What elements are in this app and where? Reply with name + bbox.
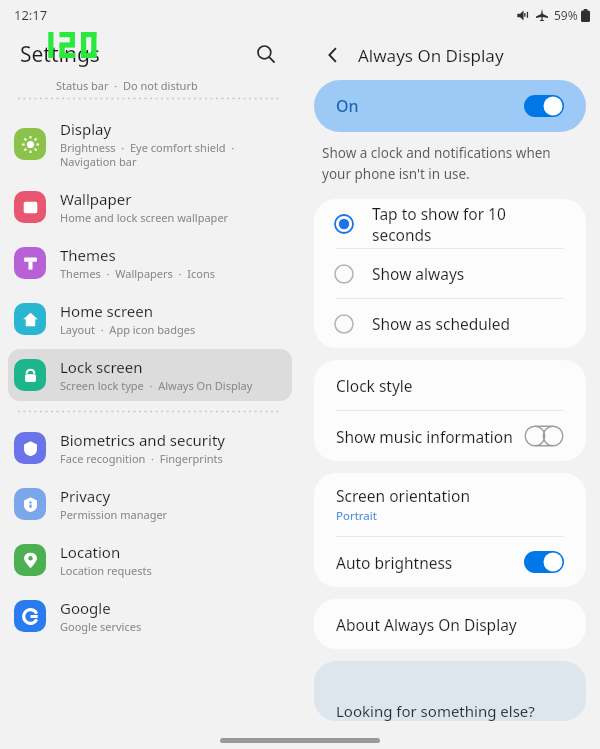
staticText: On [336, 95, 359, 117]
staticText: Status bar · Do not disturb [56, 78, 198, 93]
staticText: Auto brightness [336, 552, 453, 573]
staticText: Themes · Wallpapers · Icons [60, 266, 215, 281]
staticText: Portrait [336, 508, 377, 524]
button[interactable]: Home screen [8, 293, 292, 345]
staticText: Home screen [60, 301, 154, 321]
staticText: Lock screen [60, 357, 143, 377]
staticText: Google services [60, 619, 142, 634]
staticText: Looking for something else? [336, 701, 535, 721]
button[interactable]: Display [8, 111, 292, 177]
button[interactable]: Lock screen [8, 349, 292, 401]
button[interactable]: Screen orientation [314, 473, 586, 536]
staticText: Show a clock and notifications when your… [322, 144, 551, 183]
staticText: Show music information [336, 426, 513, 447]
staticText: About Always On Display [336, 614, 517, 635]
button[interactable]: Show as scheduled [314, 299, 586, 348]
staticText: Screen orientation [336, 485, 471, 506]
button[interactable]: Looking for something else? [314, 661, 586, 721]
button[interactable]: Biometrics and security [8, 422, 292, 474]
staticText: Wallpaper [60, 189, 132, 209]
staticText: Always On Display [358, 44, 504, 67]
staticText: 59% [554, 7, 578, 23]
staticText: Clock style [336, 375, 413, 396]
staticText: Google [60, 598, 111, 618]
staticText: Show always [372, 263, 465, 284]
staticText: Show as scheduled [372, 313, 511, 334]
staticText: Location [60, 542, 121, 562]
button[interactable]: Tap to show for 10 seconds [314, 199, 586, 248]
button[interactable]: Show always [314, 249, 586, 298]
staticText: Tap to show for 10 seconds [372, 203, 566, 245]
button[interactable]: Privacy [8, 478, 292, 530]
staticText: Home and lock screen wallpaper [60, 210, 229, 225]
staticText: Themes [60, 245, 116, 265]
button[interactable]: Show music information [314, 411, 586, 461]
button[interactable]: Clock style [314, 360, 586, 410]
button[interactable]: About Always On Display [314, 599, 586, 649]
staticText: Screen lock type · Always On Display [60, 378, 253, 393]
staticText: Privacy [60, 486, 111, 506]
staticText: 12:17 [14, 6, 48, 24]
button[interactable]: Wallpaper [8, 181, 292, 233]
staticText: Biometrics and security [60, 430, 226, 450]
button[interactable]: Location [8, 534, 292, 586]
staticText: Face recognition · Fingerprints [60, 451, 223, 466]
button[interactable]: On [314, 80, 586, 132]
staticText: Settings [20, 40, 100, 69]
staticText: Layout · App icon badges [60, 322, 196, 337]
button[interactable]: Auto brightness [314, 537, 586, 587]
button[interactable]: Back [316, 38, 350, 72]
button[interactable]: Google [8, 590, 292, 642]
staticText: Permission manager [60, 507, 168, 522]
staticText: Brightness · Eye comfort shield · Naviga… [60, 140, 235, 169]
staticText: Location requests [60, 563, 152, 578]
button[interactable]: Search [248, 36, 284, 72]
button[interactable]: Themes [8, 237, 292, 289]
staticText: Display [60, 119, 112, 139]
